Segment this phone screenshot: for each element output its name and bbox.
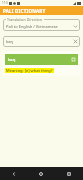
button[interactable]: kaŋ (3, 36, 80, 47)
button[interactable]: Expand entry (71, 57, 76, 62)
staticText: Pali to English / Vietnamese (6, 24, 58, 29)
button[interactable]: Pali to English / Vietnamese (3, 19, 80, 31)
button[interactable]: PALI DICTIONARY (0, 6, 83, 15)
staticText: kaŋ (8, 57, 16, 63)
staticText: Translation Direction (7, 17, 43, 22)
button[interactable]: Home (27, 167, 55, 180)
button[interactable]: Back (0, 167, 27, 180)
staticText: PALI DICTIONARY (3, 8, 46, 14)
button[interactable]: Clear search (73, 39, 78, 44)
button[interactable]: kaŋ (5, 54, 78, 65)
staticText: 11:5 (2, 1, 8, 5)
staticText: Meaning: [e] what thing? (6, 68, 53, 73)
button[interactable]: Recent apps (55, 167, 83, 180)
button[interactable]: kaŋ (2, 51, 81, 76)
staticText: kaŋ (6, 39, 14, 45)
